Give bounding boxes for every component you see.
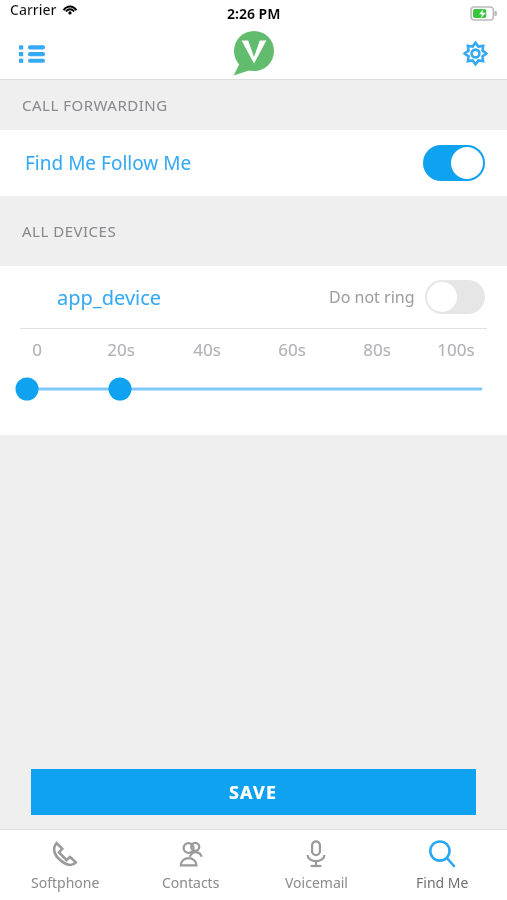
staticText: 2:26 PM xyxy=(227,4,281,23)
staticText: Contacts xyxy=(162,873,220,892)
button[interactable]: Softphone xyxy=(5,833,125,898)
staticText: SAVE xyxy=(229,780,278,805)
button[interactable]: Find Me Follow Me enabled xyxy=(423,145,485,181)
button[interactable]: Find Me xyxy=(382,833,502,898)
staticText: Find Me Follow Me xyxy=(25,150,192,176)
button[interactable]: Find Me Follow Me xyxy=(0,130,507,196)
button[interactable]: Voicemail xyxy=(256,833,376,898)
button[interactable]: Ring duration range xyxy=(0,373,507,419)
staticText: Do not ring xyxy=(329,286,415,308)
staticText: CALL FORWARDING xyxy=(22,95,168,115)
staticText: 20s xyxy=(91,338,151,361)
staticText: Voicemail xyxy=(285,873,348,892)
staticText: Find Me xyxy=(416,873,469,892)
staticText: Softphone xyxy=(31,873,100,892)
button[interactable]: Settings xyxy=(453,31,497,75)
button[interactable]: app_device xyxy=(0,266,507,328)
staticText: 60s xyxy=(262,338,322,361)
staticText: app_device xyxy=(57,284,162,311)
button[interactable]: Contacts xyxy=(131,833,251,898)
staticText: 40s xyxy=(177,338,237,361)
button[interactable]: SAVE xyxy=(31,769,476,815)
staticText: 0 xyxy=(7,338,67,361)
staticText: ALL DEVICES xyxy=(22,221,117,241)
staticText: 100s xyxy=(426,338,486,361)
button[interactable]: Do not ring disabled xyxy=(425,280,485,314)
staticText: Carrier xyxy=(10,0,57,19)
staticText: 80s xyxy=(347,338,407,361)
button[interactable]: Menu xyxy=(10,31,54,75)
